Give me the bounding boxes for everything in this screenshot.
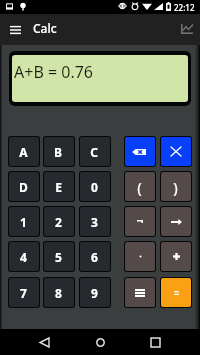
button[interactable]: B xyxy=(44,137,74,166)
button[interactable]: A xyxy=(9,137,39,166)
button[interactable]: 1 xyxy=(9,207,39,236)
button[interactable]: Implies xyxy=(161,207,191,236)
staticText: A xyxy=(19,144,28,160)
staticText: 6 xyxy=(91,249,98,265)
button[interactable]: 5 xyxy=(44,242,74,271)
button[interactable]: Recent apps xyxy=(141,329,170,355)
button[interactable]: Or xyxy=(161,242,191,271)
staticText: 22:12 xyxy=(174,2,195,13)
button[interactable]: 8 xyxy=(44,278,74,307)
button[interactable]: 2 xyxy=(44,207,74,236)
button[interactable]: Backspace xyxy=(125,137,155,166)
staticText: 7 xyxy=(20,285,27,301)
staticText: 0 xyxy=(91,179,98,195)
button[interactable]: 3 xyxy=(80,207,110,236)
button[interactable]: C xyxy=(80,137,110,166)
button[interactable]: Graph xyxy=(176,18,198,40)
staticText: E xyxy=(55,179,62,195)
staticText: A+B = 0.76 xyxy=(14,61,93,83)
staticText: 5 xyxy=(55,249,62,265)
button[interactable]: 6 xyxy=(80,242,110,271)
button[interactable]: Home xyxy=(85,329,115,355)
button[interactable]: And xyxy=(125,242,155,271)
button[interactable]: E xyxy=(44,172,74,201)
staticText: 1 xyxy=(20,214,27,230)
button[interactable]: Not xyxy=(125,207,155,236)
button[interactable]: Back xyxy=(30,329,59,355)
button[interactable]: ) xyxy=(161,172,191,201)
button[interactable]: 0 xyxy=(80,172,110,201)
button[interactable]: ( xyxy=(125,172,155,201)
staticText: 3 xyxy=(91,214,98,230)
staticText: 9 xyxy=(91,285,98,301)
staticText: ( xyxy=(137,177,142,197)
button[interactable]: D xyxy=(9,172,39,201)
staticText: ) xyxy=(173,177,178,197)
button[interactable]: Equals xyxy=(161,278,191,307)
button[interactable]: 9 xyxy=(80,278,110,307)
button[interactable]: Equivalent xyxy=(125,278,155,307)
staticText: B xyxy=(54,144,62,160)
button[interactable]: Open navigation menu xyxy=(4,18,27,41)
staticText: Calc xyxy=(33,20,57,36)
staticText: 4 xyxy=(20,249,27,265)
button[interactable]: 4 xyxy=(9,242,39,271)
staticText: 8 xyxy=(55,285,62,301)
button[interactable]: Clear xyxy=(161,137,191,166)
staticText: D xyxy=(19,179,28,195)
staticText: 2 xyxy=(55,214,62,230)
staticText: C xyxy=(90,144,98,160)
button[interactable]: 7 xyxy=(9,278,39,307)
